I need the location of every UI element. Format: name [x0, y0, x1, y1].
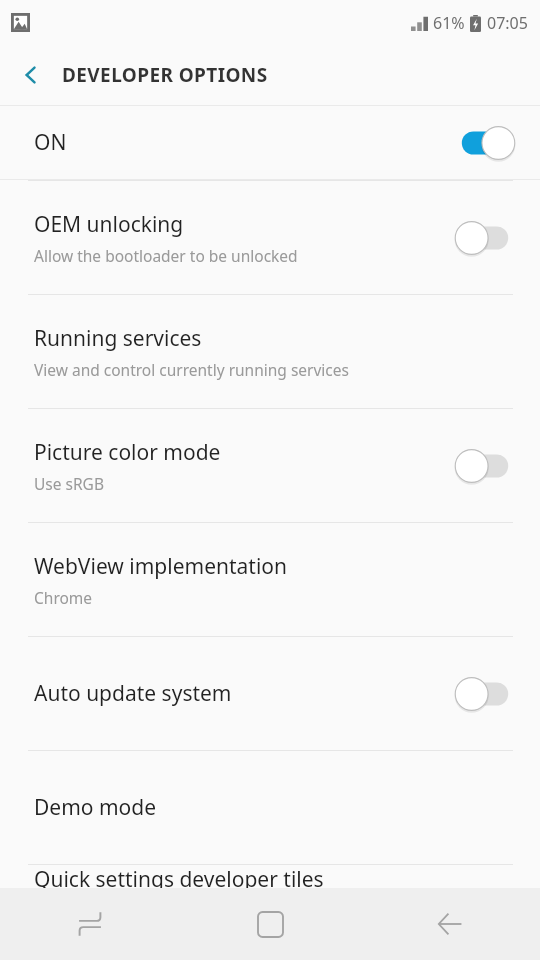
- button[interactable]: Quick settings developer tiles: [0, 865, 540, 888]
- staticText: View and control currently running servi…: [34, 359, 349, 380]
- button[interactable]: Toggle on: [456, 123, 514, 163]
- button[interactable]: OEM unlocking: [0, 181, 540, 294]
- staticText: Auto update system: [34, 679, 232, 708]
- staticText: Use sRGB: [34, 473, 104, 494]
- staticText: DEVELOPER OPTIONS: [62, 62, 268, 88]
- staticText: Chrome: [34, 587, 93, 608]
- button[interactable]: Recents: [0, 888, 180, 960]
- staticText: Quick settings developer tiles: [34, 865, 324, 888]
- button[interactable]: Running services: [0, 295, 540, 408]
- button[interactable]: Toggle off: [456, 218, 514, 258]
- staticText: Allow the bootloader to be unlocked: [34, 245, 298, 266]
- button[interactable]: Demo mode: [0, 751, 540, 864]
- staticText: Running services: [34, 324, 202, 353]
- button[interactable]: WebView implementation: [0, 523, 540, 636]
- staticText: OEM unlocking: [34, 210, 184, 239]
- staticText: WebView implementation: [34, 552, 288, 581]
- button[interactable]: Toggle off: [456, 674, 514, 714]
- staticText: ON: [34, 128, 67, 157]
- button[interactable]: Toggle off: [456, 446, 514, 486]
- button[interactable]: Picture color mode: [0, 409, 540, 522]
- button[interactable]: Auto update system: [0, 637, 540, 750]
- button[interactable]: Back: [0, 45, 62, 105]
- button[interactable]: Back: [360, 888, 540, 960]
- staticText: 07:05: [487, 12, 528, 34]
- button[interactable]: ON: [0, 106, 540, 179]
- button[interactable]: Home: [180, 888, 360, 960]
- staticText: Demo mode: [34, 793, 157, 822]
- staticText: Picture color mode: [34, 438, 221, 467]
- staticText: 61%: [433, 12, 465, 34]
